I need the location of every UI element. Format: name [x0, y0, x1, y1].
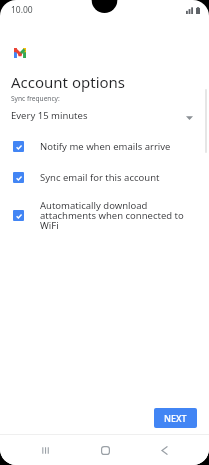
button[interactable]: Back	[149, 435, 179, 465]
button[interactable]: Automatically download attachments when …	[0, 199, 209, 232]
button[interactable]: NEXT	[154, 408, 197, 428]
staticText: Notify me when emails arrive	[40, 140, 171, 153]
staticText: Account options	[11, 72, 126, 92]
button[interactable]: Notify me when emails arrive	[0, 140, 209, 153]
button[interactable]: Home	[90, 435, 120, 465]
staticText: Sync frequency:	[11, 94, 60, 103]
staticText: Sync email for this account	[40, 171, 160, 184]
button[interactable]: Sync email for this account	[0, 171, 209, 184]
staticText: 10.00	[11, 4, 33, 16]
staticText: Every 15 minutes	[11, 109, 88, 122]
button[interactable]: Every 15 minutes	[0, 109, 209, 122]
staticText: NEXT	[164, 412, 187, 424]
button[interactable]: Recent apps	[30, 435, 60, 465]
staticText: Automatically download attachments when …	[40, 199, 187, 232]
